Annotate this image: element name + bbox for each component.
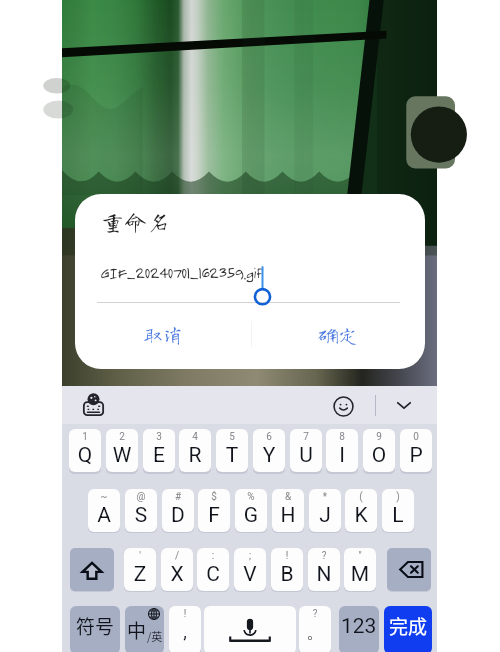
staticText: Q [69,443,101,468]
staticText: X [161,562,193,587]
staticText: # [162,491,194,503]
button[interactable]: % [235,489,267,532]
staticText: /英 [147,628,163,644]
button[interactable]: 0 [400,429,432,472]
staticText: D [162,503,194,528]
staticText: ; [234,550,266,562]
button[interactable]: * [309,489,341,532]
button[interactable]: 确定 [250,314,425,354]
button[interactable]: ) [382,489,414,532]
staticText: 完成 [389,612,428,640]
staticText: B [271,562,303,587]
staticText: E [143,443,175,468]
button[interactable]: 4 [179,429,211,472]
staticText: T [216,443,248,468]
button[interactable]: & [272,489,304,532]
staticText: ( [345,491,377,503]
staticText: 1 [69,431,101,443]
staticText: R [179,443,211,468]
staticText: % [235,491,267,503]
staticText: ~ [88,491,120,503]
button[interactable]: 123 [339,606,379,652]
button[interactable]: Emoji [333,396,354,417]
staticText: V [234,562,266,587]
button[interactable]: 8 [326,429,358,472]
staticText: M [344,562,376,587]
staticText: : [197,550,229,562]
staticText: 0 [400,431,432,443]
staticText: 重命名 [101,210,170,233]
button[interactable]: 9 [363,429,395,472]
button[interactable]: # [162,489,194,532]
button[interactable]: ! [169,606,201,652]
staticText: / [161,550,193,562]
staticText: 123 [341,614,377,639]
button[interactable]: 取消 [75,314,250,354]
button[interactable]: 符号 [70,606,120,652]
staticText: * [309,491,341,503]
button[interactable]: / [161,548,193,591]
staticText: 7 [290,431,322,443]
staticText: K [345,503,377,528]
staticText: 取消 [143,324,183,344]
button[interactable]: @ [125,489,157,532]
staticText: C [197,562,229,587]
button[interactable]: Backspace [387,548,431,591]
button[interactable]: Shift [70,548,114,591]
button[interactable]: 2 [106,429,138,472]
staticText: P [400,443,432,468]
button[interactable]: ' [124,548,156,591]
staticText: ? [308,550,340,562]
staticText: G [235,503,267,528]
staticText: 8 [326,431,358,443]
staticText: S [125,503,157,528]
button[interactable]: $ [198,489,230,532]
button[interactable]: 6 [253,429,285,472]
staticText: 4 [179,431,211,443]
button[interactable]: Hide keyboard [393,394,415,416]
staticText: 。 [299,621,331,644]
staticText: ' [124,550,156,562]
button[interactable]: ( [345,489,377,532]
staticText: GIF_20240701_162359.gif [100,262,262,282]
staticText: 2 [106,431,138,443]
button[interactable]: ~ [88,489,120,532]
staticText: L [382,503,414,528]
staticText: 中 [127,616,147,644]
staticText: " [344,550,376,562]
button[interactable]: 5 [216,429,248,472]
staticText: I [326,443,358,468]
staticText: ? [299,608,331,620]
staticText: & [272,491,304,503]
button[interactable]: 中 [125,606,164,652]
button[interactable]: 7 [290,429,322,472]
button[interactable]: 3 [143,429,175,472]
button[interactable]: Space, voice input [204,606,296,652]
button[interactable]: ! [271,548,303,591]
staticText: Y [253,443,285,468]
staticText: U [290,443,322,468]
staticText: , [169,621,201,642]
button[interactable]: ? [299,606,331,652]
staticText: 6 [253,431,285,443]
button[interactable]: ? [308,548,340,591]
button[interactable]: 1 [69,429,101,472]
staticText: 5 [216,431,248,443]
button[interactable]: ; [234,548,266,591]
staticText: A [88,503,120,528]
staticText: N [308,562,340,587]
staticText: F [198,503,230,528]
staticText: 确定 [318,324,358,344]
staticText: @ [125,491,157,503]
staticText: ) [382,491,414,503]
staticText: ! [169,608,201,620]
staticText: Z [124,562,156,587]
button[interactable]: 完成 [384,606,432,652]
staticText: O [363,443,395,468]
staticText: W [106,443,138,468]
button[interactable]: " [344,548,376,591]
button[interactable]: Switch input language [83,393,104,416]
staticText: H [272,503,304,528]
staticText: J [309,503,341,528]
button[interactable]: : [197,548,229,591]
